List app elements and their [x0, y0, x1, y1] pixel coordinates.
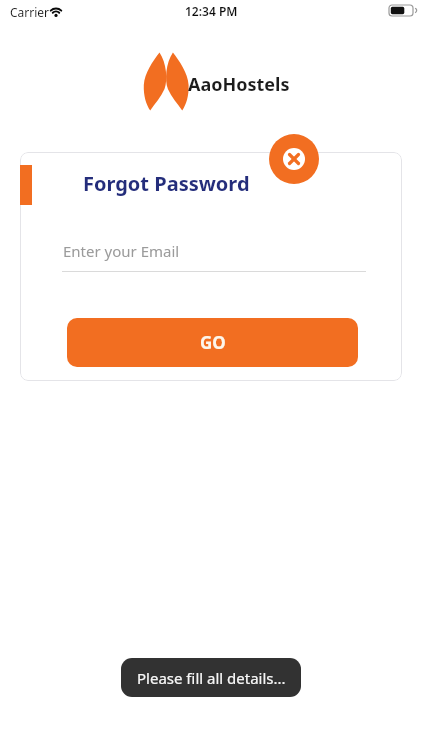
staticText: Forgot Password [83, 170, 250, 197]
staticText: AaoHostels [188, 72, 290, 97]
staticText: Enter your Email [63, 241, 180, 261]
button[interactable]: Enter your Email [62, 236, 366, 272]
button[interactable] [269, 134, 319, 184]
button[interactable]: GO [67, 318, 358, 367]
staticText: Please fill all details... [137, 668, 286, 688]
staticText: Carrier [10, 4, 50, 20]
staticText: 12:34 PM [185, 3, 238, 19]
staticText: GO [200, 331, 226, 354]
